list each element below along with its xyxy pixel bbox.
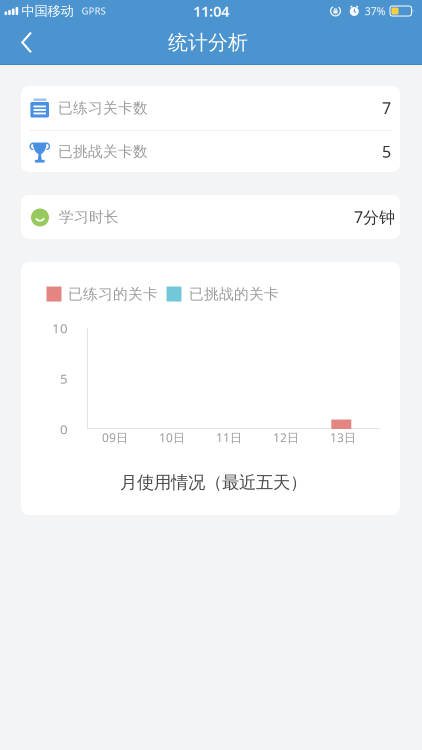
- staticText: 09日: [102, 429, 128, 445]
- staticText: 5: [382, 141, 391, 162]
- staticText: 已挑战的关卡: [189, 285, 279, 303]
- staticText: 11日: [216, 429, 242, 445]
- staticText: 0: [60, 420, 68, 438]
- staticText: 7分钟: [354, 206, 395, 228]
- staticText: 已挑战关卡数: [58, 142, 148, 160]
- staticText: 中国移动: [21, 3, 73, 19]
- staticText: 37%: [364, 4, 385, 18]
- button[interactable]: Back: [0, 28, 44, 59]
- staticText: 10: [52, 319, 68, 337]
- staticText: 已练习的关卡: [68, 285, 158, 303]
- staticText: GPRS: [81, 5, 105, 17]
- staticText: 已练习关卡数: [58, 99, 148, 117]
- staticText: 统计分析: [168, 30, 248, 55]
- staticText: 7: [382, 97, 391, 119]
- staticText: 13日: [330, 429, 356, 445]
- staticText: 11:04: [193, 1, 229, 21]
- staticText: 12日: [273, 429, 299, 445]
- staticText: 月使用情况（最近五天）: [120, 472, 307, 493]
- staticText: 学习时长: [59, 208, 119, 226]
- staticText: 10日: [159, 429, 185, 445]
- staticText: 5: [60, 370, 68, 387]
